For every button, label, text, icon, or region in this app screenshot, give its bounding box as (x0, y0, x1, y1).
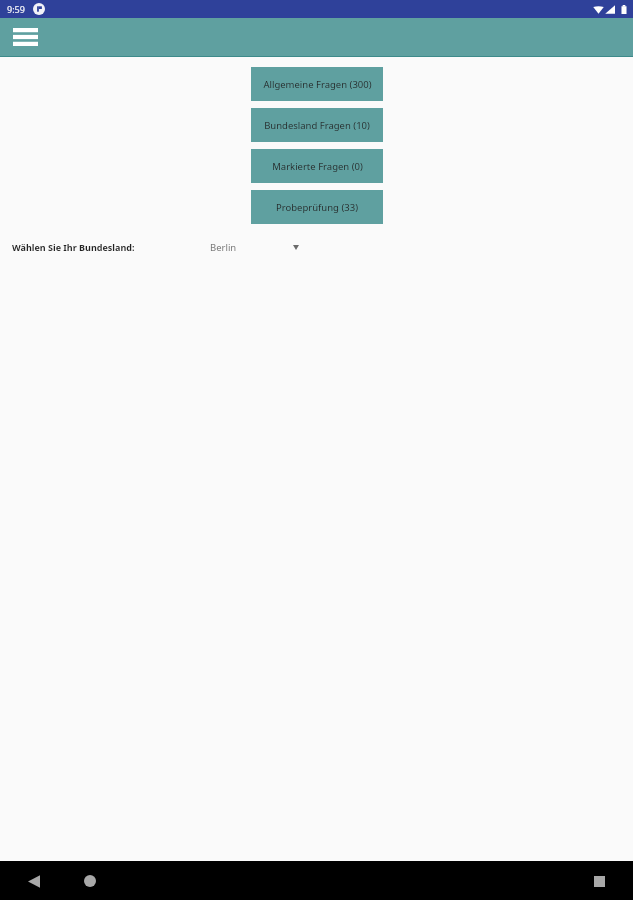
button[interactable]: Markierte Fragen (0) (251, 149, 383, 183)
staticText: Berlin (210, 241, 237, 254)
button[interactable]: Bundesland Fragen (10) (251, 108, 383, 142)
staticText: Allgemeine Fragen (300) (263, 78, 372, 91)
button[interactable]: Allgemeine Fragen (300) (251, 67, 383, 101)
button[interactable]: Home (68, 862, 112, 900)
staticText: Probeprüfung (33) (276, 201, 358, 214)
staticText: 9:59 (7, 3, 25, 15)
button[interactable]: Back (12, 862, 56, 900)
button[interactable]: Berlin (206, 232, 302, 258)
button[interactable]: Open navigation menu (13, 28, 38, 46)
staticText: Bundesland Fragen (10) (264, 119, 370, 132)
button[interactable]: Recent apps (577, 862, 621, 900)
button[interactable]: Probeprüfung (33) (251, 190, 383, 224)
staticText: Markierte Fragen (0) (272, 160, 363, 173)
staticText: Wählen Sie Ihr Bundesland: (12, 241, 135, 253)
